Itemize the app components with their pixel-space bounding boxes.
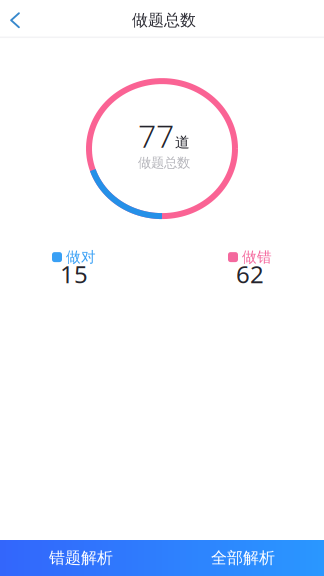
button[interactable]: 错题解析 [0,540,162,576]
button[interactable]: Back [0,0,34,36]
staticText: 做错 [242,248,272,266]
staticText: 62 [236,258,264,290]
staticText: 做题总数 [138,155,190,171]
button[interactable]: 全部解析 [162,540,324,576]
staticText: 错题解析 [49,548,113,568]
staticText: 77 [138,114,174,157]
staticText: 道 [175,133,190,151]
staticText: 做题总数 [132,10,196,30]
staticText: 做对 [66,248,96,266]
staticText: 全部解析 [211,548,275,568]
staticText: 15 [60,258,88,290]
